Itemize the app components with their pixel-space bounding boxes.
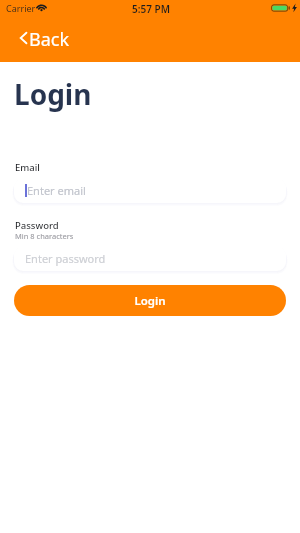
button[interactable]: Login [14,285,286,316]
button[interactable]: Back [17,25,73,54]
staticText: Carrier [6,2,36,14]
button[interactable]: Enter email [14,178,286,203]
staticText: Login [14,75,92,113]
staticText: 5:57 PM [132,2,170,16]
staticText: Login [134,293,166,309]
button[interactable]: Enter password [14,246,286,271]
other: Wi-Fi signal [37,4,46,11]
staticText: Min 8 characters [15,231,74,241]
staticText: Enter email [27,183,86,198]
staticText: Back [29,27,70,52]
staticText: Email [15,161,40,174]
staticText: Enter password [25,251,106,266]
other: Battery charging [271,3,297,13]
staticText: Password [15,219,59,232]
